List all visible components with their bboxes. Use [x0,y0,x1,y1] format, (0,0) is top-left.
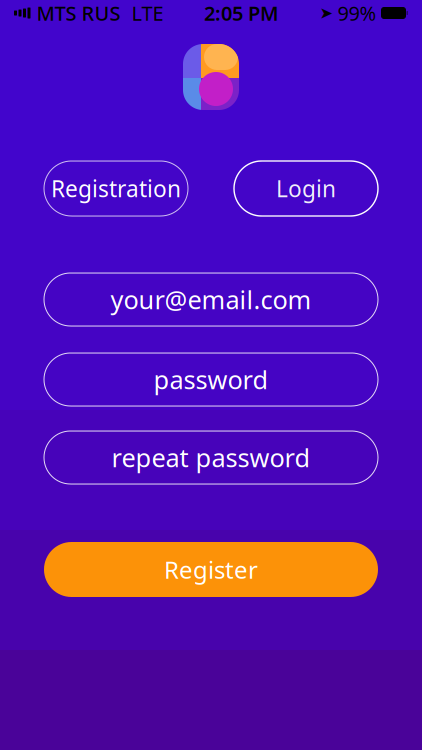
button[interactable]: Registration [44,161,188,216]
staticText: Register [164,554,258,585]
staticText: ➤ [319,4,332,22]
button[interactable]: your@email.com [44,273,378,326]
staticText: your@email.com [110,283,311,316]
staticText: password [153,363,268,396]
button[interactable]: repeat password [44,431,378,484]
staticText: MTS RUS [36,0,120,26]
staticText: LTE [131,0,163,26]
button[interactable]: Register [44,542,378,597]
button[interactable]: password [44,353,378,406]
staticText: Login [276,173,336,203]
staticText: repeat password [111,441,310,474]
staticText: 99% [337,0,376,26]
staticText: Registration [51,173,181,203]
button[interactable]: Login [234,161,378,216]
staticText: 2:05 PM [204,0,279,26]
